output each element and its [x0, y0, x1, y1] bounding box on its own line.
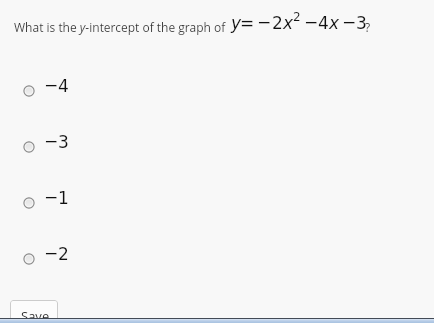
staticText: 1 — [58, 188, 69, 208]
staticText: 4 — [318, 13, 329, 33]
staticText: 3 — [58, 132, 69, 152]
staticText: − — [44, 243, 59, 263]
staticText: − — [44, 131, 59, 151]
staticText: 2 — [58, 244, 69, 264]
staticText: 3 — [356, 13, 367, 33]
staticText: x — [283, 13, 294, 33]
button[interactable]: Select answer — [14, 243, 144, 275]
staticText: = — [240, 13, 255, 33]
other: Select answer — [23, 253, 35, 265]
other: Select answer — [23, 85, 35, 97]
staticText: y — [231, 13, 242, 33]
staticText: − — [304, 12, 319, 32]
staticText: − — [44, 187, 59, 207]
staticText: ? — [365, 19, 371, 35]
staticText: − — [44, 75, 59, 95]
staticText: 2 — [272, 13, 283, 33]
staticText: − — [257, 12, 272, 32]
staticText: − — [342, 12, 357, 32]
button[interactable]: Save — [10, 300, 58, 323]
staticText: 2 — [293, 10, 301, 24]
staticText: What is the y-intercept of the graph of — [14, 19, 226, 35]
staticText: 4 — [58, 76, 69, 96]
other: Select answer — [23, 197, 35, 209]
button[interactable]: Select answer — [14, 131, 144, 163]
other: Select answer — [23, 141, 35, 153]
button[interactable]: Select answer — [14, 187, 144, 219]
staticText: Save — [21, 307, 50, 323]
staticText: x — [329, 13, 340, 33]
button[interactable]: Select answer — [14, 75, 144, 107]
